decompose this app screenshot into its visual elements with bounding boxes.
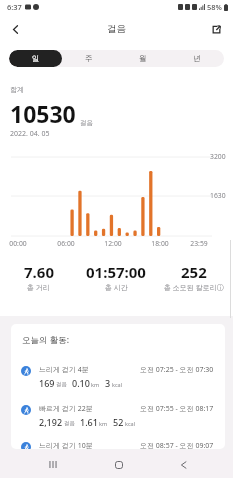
button[interactable]: Open in new [203,16,229,42]
staticText: 오전 07:55 - 오전 08:17 [140,404,214,414]
staticText: 걸음 [56,381,67,388]
button[interactable]: Recent apps [41,453,64,476]
staticText: 걸음 [80,119,93,127]
staticText: 3 [105,377,111,389]
staticText: 23:59 [185,239,213,248]
button[interactable]: Back [172,453,195,476]
staticText: 12:00 [99,239,127,248]
staticText: kcal [125,420,136,427]
staticText: kcal [112,381,123,388]
staticText: 00:00 [4,239,32,248]
staticText: 58% [207,2,222,12]
button[interactable]: 월 [116,50,170,67]
staticText: 10530 [10,98,76,129]
button[interactable]: 빠르게 걷기 22분 [11,404,225,428]
staticText: 오전 08:57 - 오전 09:07 [140,441,214,449]
button[interactable]: 주 [62,50,116,67]
staticText: 걸음 [107,23,126,35]
staticText: 느리게 걷기 10분 [39,441,93,449]
button[interactable]: Home [107,453,130,476]
staticText: 252 [181,262,207,282]
staticText: km [99,420,108,427]
staticText: 1630 [210,191,226,200]
button[interactable]: 느리게 걷기 4분 [11,365,225,389]
staticText: 3200 [210,152,226,161]
staticText: 총 시간 [105,283,128,293]
staticText: 오늘의 활동: [22,334,70,346]
staticText: 06:00 [52,239,80,248]
button[interactable]: 느리게 걷기 10분 [11,441,225,449]
button[interactable]: 년 [170,50,224,67]
staticText: 169 [39,377,55,389]
staticText: 1.61 [80,416,98,428]
staticText: 주 [85,54,93,63]
staticText: 총 소모된 칼로리ⓘ [164,283,224,293]
staticText: 월 [139,54,147,63]
staticText: 2,192 [39,416,63,428]
staticText: 걸음 [64,420,75,427]
staticText: 느리게 걷기 4분 [39,365,89,375]
staticText: 빠르게 걷기 22분 [39,404,93,414]
staticText: 52 [113,416,124,428]
staticText: 오전 07:25 - 오전 07:30 [140,365,214,375]
button[interactable]: Back [2,16,28,42]
staticText: km [91,381,100,388]
staticText: 01:57:00 [86,262,146,282]
staticText: 0.10 [72,377,90,389]
staticText: 총 거리 [27,283,50,293]
staticText: 18:00 [146,239,174,248]
staticText: 일 [32,54,40,63]
staticText: 6:37 [7,2,22,12]
staticText: 7.60 [24,262,54,282]
staticText: 2022. 04. 05 [10,129,50,139]
staticText: 년 [193,54,201,63]
staticText: 합계 [10,85,24,94]
button[interactable]: 일 [9,50,62,67]
